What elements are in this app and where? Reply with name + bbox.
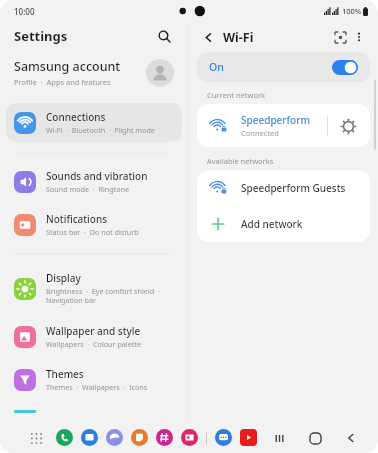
- button[interactable]: On: [197, 52, 370, 82]
- staticText: 100%: [342, 6, 362, 16]
- staticText: On: [209, 60, 224, 74]
- staticText: 10:00: [14, 6, 35, 17]
- button[interactable]: Display: [6, 264, 182, 313]
- staticText: Speedperform Guests: [241, 181, 346, 195]
- staticText: Status bar · Do not disturb: [46, 227, 139, 237]
- staticText: Wi-Fi · Bluetooth · Flight mode: [46, 125, 155, 135]
- button[interactable]: Sounds and vibration: [6, 162, 182, 201]
- button[interactable]: Home: [304, 427, 326, 449]
- staticText: Current network: [207, 90, 266, 100]
- staticText: Display: [46, 271, 81, 285]
- button[interactable]: Connections: [6, 103, 182, 142]
- staticText: Wi-Fi: [223, 29, 330, 46]
- button[interactable]: Scan QR code: [330, 27, 350, 47]
- staticText: Settings: [14, 27, 154, 45]
- button[interactable]: Recents: [268, 427, 290, 449]
- staticText: Connected: [241, 128, 279, 138]
- button[interactable]: Speedperform Guests: [197, 170, 370, 206]
- staticText: Available networks: [207, 156, 274, 166]
- button[interactable]: App 7: [240, 429, 257, 446]
- staticText: Themes · Wallpapers · Icons: [46, 382, 148, 392]
- button[interactable]: Back: [199, 28, 217, 46]
- button[interactable]: Search: [154, 26, 174, 46]
- staticText: Profile · Apps and features: [14, 77, 111, 87]
- staticText: Connections: [46, 110, 106, 124]
- button[interactable]: More options: [350, 28, 368, 46]
- staticText: Sounds and vibration: [46, 169, 148, 183]
- staticText: Wallpapers · Colour palette: [46, 339, 141, 349]
- button[interactable]: App 1: [81, 429, 98, 446]
- button[interactable]: All apps: [28, 430, 44, 446]
- staticText: Notifications: [46, 212, 108, 226]
- staticText: Speedperform: [241, 113, 310, 127]
- button[interactable]: Samsung account: [0, 50, 188, 97]
- button[interactable]: Wallpaper and style: [6, 317, 182, 356]
- button[interactable]: Notifications: [6, 205, 182, 244]
- staticText: Samsung account: [14, 58, 121, 75]
- button[interactable]: App 2: [106, 429, 123, 446]
- button[interactable]: Speedperform: [197, 104, 370, 147]
- staticText: Wallpaper and style: [46, 324, 141, 338]
- staticText: Brightness · Eye comfort shield · Naviga…: [46, 286, 160, 306]
- button[interactable]: Back: [340, 427, 362, 449]
- staticText: Sound mode · Ringtone: [46, 184, 130, 194]
- button[interactable]: App 5: [181, 429, 198, 446]
- staticText: Themes: [46, 367, 84, 381]
- button[interactable]: Themes: [6, 360, 182, 399]
- staticText: Add network: [241, 217, 303, 231]
- button[interactable]: App 0: [56, 429, 73, 446]
- button[interactable]: App 3: [131, 429, 148, 446]
- button[interactable]: App 6: [215, 429, 232, 446]
- button[interactable]: Network settings: [338, 116, 358, 136]
- button[interactable]: Add network: [197, 206, 370, 242]
- button[interactable]: Home screen: [6, 403, 182, 420]
- button[interactable]: App 4: [156, 429, 173, 446]
